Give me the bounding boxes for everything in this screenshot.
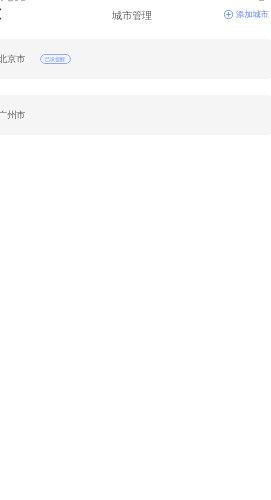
button[interactable]: 添加城市 <box>218 6 271 22</box>
button[interactable]: 广州市 <box>0 95 271 135</box>
other: 添加城市 <box>224 10 233 19</box>
staticText: 城市管理 <box>112 9 152 22</box>
button[interactable]: 返回 <box>0 2 9 26</box>
button[interactable]: 北京市 <box>0 39 271 79</box>
staticText: 广州市 <box>0 109 26 121</box>
staticText: 添加城市 <box>236 9 269 19</box>
staticText: 已设提醒 <box>45 56 67 62</box>
staticText: 北京市 <box>0 53 26 65</box>
